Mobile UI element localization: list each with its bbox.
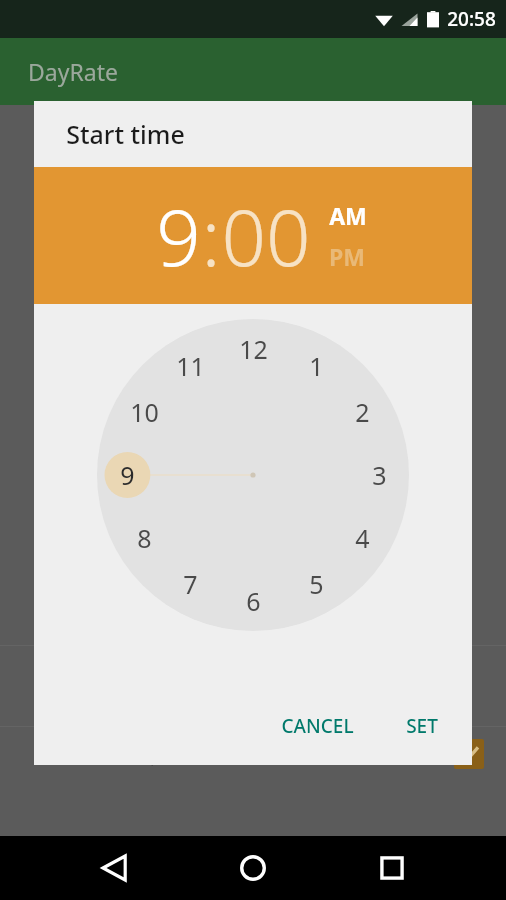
button[interactable]: Back <box>91 844 139 892</box>
staticText: 5 <box>309 567 324 601</box>
staticText: PM <box>329 241 365 272</box>
staticText: 10 <box>130 395 159 429</box>
staticText: 11 <box>176 349 205 383</box>
button[interactable]: 9 <box>156 183 201 289</box>
staticText: 00 <box>221 183 311 289</box>
staticText: CANCEL <box>281 713 354 739</box>
button[interactable]: Home <box>229 844 277 892</box>
button[interactable]: CANCEL <box>265 703 370 749</box>
staticText: Start time <box>66 117 185 151</box>
staticText: 9 <box>120 458 135 492</box>
staticText: 12 <box>239 332 268 366</box>
button[interactable]: PM <box>329 241 365 272</box>
staticText: When checked, a second time will start <box>34 746 344 769</box>
staticText: 2 <box>355 395 370 429</box>
button[interactable]: Clock face <box>97 319 409 631</box>
button[interactable]: 00 <box>221 183 311 289</box>
button[interactable]: SET <box>390 703 454 749</box>
button[interactable]: Overtime checkbox <box>454 739 484 769</box>
staticText: DayRate <box>28 56 118 87</box>
staticText: 8 <box>137 521 152 555</box>
staticText: AM <box>329 200 367 231</box>
button[interactable]: Recents <box>368 844 416 892</box>
staticText: 3 <box>372 458 387 492</box>
staticText: 20:58 <box>447 6 496 32</box>
staticText: : <box>201 183 221 289</box>
staticText: SET <box>406 713 438 739</box>
staticText: 7 <box>183 567 198 601</box>
staticText: 4 <box>355 521 370 555</box>
staticText: 6 <box>246 584 261 618</box>
button[interactable]: DayRate <box>28 56 118 87</box>
button[interactable]: AM <box>329 200 367 231</box>
staticText: 9 <box>156 183 201 289</box>
staticText: 1 <box>309 349 324 383</box>
